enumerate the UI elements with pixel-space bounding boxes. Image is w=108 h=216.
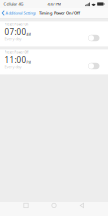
staticText: Cellular 4G [3, 1, 23, 7]
staticText: 07:00 [4, 26, 26, 37]
staticText: Preset Power Off [4, 51, 28, 54]
staticText: 4:47 PM [47, 1, 61, 7]
staticText: PM [27, 61, 31, 64]
staticText: 11:00 [4, 54, 26, 65]
button[interactable]: Preset Power On [0, 21, 108, 46]
staticText: Preset Power On [4, 23, 28, 26]
button[interactable]: Home [39, 201, 68, 216]
staticText: Additional Settings [5, 10, 36, 16]
button[interactable]: Preset Power Off [0, 49, 108, 74]
button[interactable]: Back [68, 201, 95, 216]
staticText: Every day [4, 36, 21, 41]
button[interactable]: Recents [12, 201, 39, 216]
button[interactable]: Additional Settings [0, 8, 39, 18]
staticText: Every day [4, 64, 21, 69]
staticText: AM [27, 33, 31, 36]
staticText: Timing Power On/Off [39, 10, 80, 16]
